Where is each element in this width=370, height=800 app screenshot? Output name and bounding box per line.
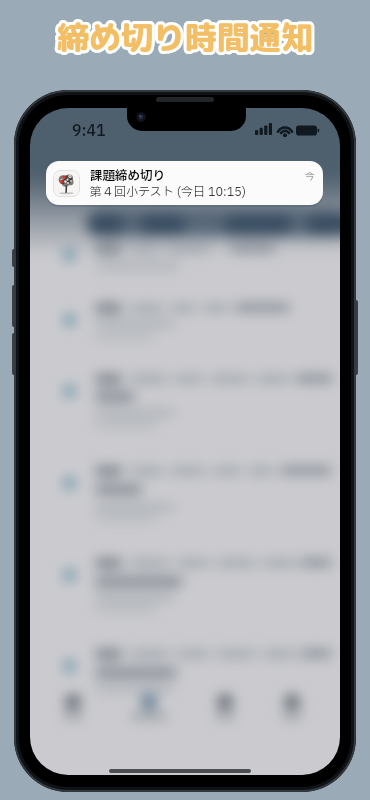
staticText: 課題締め切り xyxy=(90,167,166,186)
staticText: 締め切り時間通知 xyxy=(57,15,314,60)
button[interactable]: 課題締め切り xyxy=(46,161,323,205)
staticText: 第４回小テスト (今日 10:15) xyxy=(90,183,247,201)
staticText: 今 xyxy=(305,169,315,184)
staticText: 締め切り時間通知 xyxy=(57,15,314,60)
staticText: 9:41 xyxy=(72,120,106,140)
